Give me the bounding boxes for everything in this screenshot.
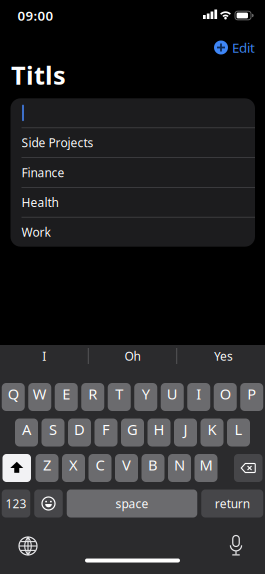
staticText: W bbox=[33, 384, 47, 404]
button[interactable]: space bbox=[67, 489, 197, 517]
button[interactable]: Health bbox=[10, 188, 255, 217]
button[interactable]: K bbox=[200, 418, 223, 446]
staticText: G bbox=[127, 420, 138, 439]
staticText: 09:00 bbox=[17, 7, 53, 24]
button[interactable]: E bbox=[55, 383, 78, 411]
button[interactable]: Delete bbox=[234, 454, 262, 482]
button[interactable]: Side Projects bbox=[10, 128, 255, 157]
staticText: C bbox=[95, 455, 104, 475]
button[interactable]: Emoji bbox=[34, 489, 63, 517]
staticText: Q bbox=[8, 384, 19, 404]
staticText: R bbox=[88, 384, 97, 404]
button[interactable]: Dictate bbox=[226, 535, 246, 555]
staticText: U bbox=[167, 384, 178, 404]
staticText: P bbox=[247, 384, 256, 404]
staticText: X bbox=[69, 455, 78, 475]
staticText: D bbox=[74, 420, 85, 439]
button[interactable]: New item bbox=[10, 98, 255, 127]
button[interactable]: Edit bbox=[214, 39, 255, 56]
staticText: I bbox=[196, 384, 201, 404]
button[interactable]: D bbox=[68, 418, 91, 446]
staticText: Finance bbox=[21, 164, 64, 180]
staticText: Y bbox=[142, 384, 150, 404]
staticText: T bbox=[115, 384, 123, 404]
button[interactable]: S bbox=[41, 418, 64, 446]
staticText: Health bbox=[21, 194, 58, 210]
button[interactable]: 123 bbox=[2, 489, 30, 517]
button[interactable]: H bbox=[147, 418, 170, 446]
button[interactable]: Z bbox=[35, 454, 58, 482]
staticText: K bbox=[207, 420, 216, 439]
button[interactable]: Oh bbox=[89, 341, 175, 371]
button[interactable]: R bbox=[81, 383, 104, 411]
button[interactable]: Y bbox=[134, 383, 157, 411]
staticText: return bbox=[215, 495, 250, 511]
staticText: Z bbox=[43, 455, 51, 475]
staticText: L bbox=[234, 420, 242, 439]
button[interactable]: X bbox=[62, 454, 85, 482]
staticText: Side Projects bbox=[21, 135, 93, 151]
button[interactable]: Finance bbox=[10, 158, 255, 187]
button[interactable]: Next keyboard bbox=[18, 536, 37, 555]
button[interactable]: Yes bbox=[180, 341, 265, 371]
staticText: Yes bbox=[214, 348, 233, 364]
staticText: B bbox=[148, 455, 158, 475]
button[interactable]: U bbox=[161, 383, 184, 411]
staticText: M bbox=[199, 455, 212, 475]
staticText: A bbox=[22, 420, 31, 439]
button[interactable]: O bbox=[214, 383, 237, 411]
button[interactable]: Shift bbox=[2, 454, 31, 482]
button[interactable]: B bbox=[141, 454, 164, 482]
staticText: O bbox=[220, 384, 231, 404]
staticText: J bbox=[183, 420, 187, 439]
button[interactable]: J bbox=[174, 418, 197, 446]
staticText: Titls bbox=[11, 58, 66, 92]
button[interactable]: Work bbox=[10, 218, 255, 247]
button[interactable]: M bbox=[194, 454, 217, 482]
button[interactable]: Q bbox=[2, 383, 25, 411]
staticText: Oh bbox=[124, 348, 140, 364]
staticText: Work bbox=[21, 224, 50, 240]
button[interactable]: N bbox=[168, 454, 191, 482]
button[interactable]: F bbox=[94, 418, 117, 446]
staticText: I bbox=[42, 348, 46, 364]
button[interactable]: P bbox=[240, 383, 263, 411]
button[interactable]: C bbox=[88, 454, 111, 482]
staticText: S bbox=[49, 420, 57, 439]
staticText: Edit bbox=[232, 39, 255, 56]
staticText: 123 bbox=[5, 495, 26, 511]
button[interactable]: I bbox=[187, 383, 210, 411]
button[interactable]: A bbox=[15, 418, 38, 446]
button[interactable]: L bbox=[227, 418, 250, 446]
button[interactable]: V bbox=[115, 454, 138, 482]
button[interactable]: W bbox=[28, 383, 51, 411]
staticText: N bbox=[174, 455, 185, 475]
staticText: V bbox=[122, 455, 131, 475]
staticText: space bbox=[115, 495, 148, 511]
button[interactable]: T bbox=[108, 383, 131, 411]
staticText: H bbox=[153, 420, 164, 439]
button[interactable]: return bbox=[201, 489, 263, 517]
staticText: F bbox=[102, 420, 110, 439]
button[interactable]: G bbox=[121, 418, 144, 446]
button[interactable]: I bbox=[1, 341, 87, 371]
staticText: E bbox=[62, 384, 70, 404]
